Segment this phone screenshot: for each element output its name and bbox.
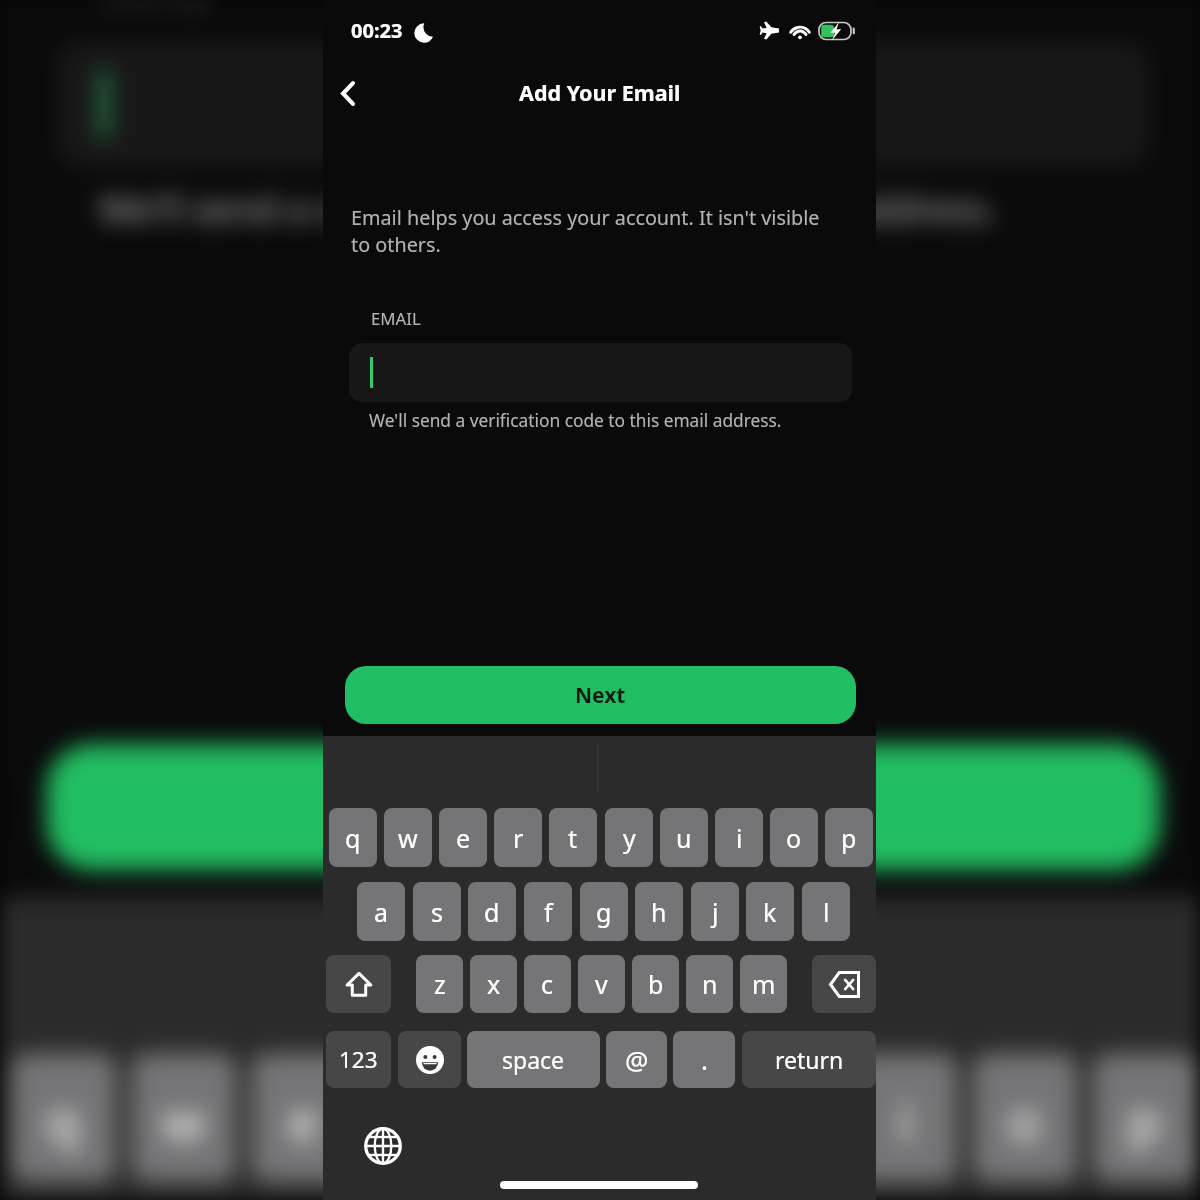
staticText: j — [712, 895, 719, 929]
staticText: return — [775, 1044, 844, 1075]
staticText: k — [763, 895, 777, 929]
staticText: . — [701, 1042, 708, 1077]
button[interactable]: e — [439, 808, 487, 867]
button[interactable]: g — [580, 882, 628, 941]
button[interactable]: v — [578, 955, 625, 1013]
staticText: 00:23 — [351, 17, 403, 44]
button[interactable]: a — [357, 882, 405, 941]
button[interactable]: r — [494, 808, 542, 867]
button[interactable]: x — [470, 955, 517, 1013]
staticText: o — [1008, 1082, 1043, 1156]
button[interactable]: j — [691, 882, 739, 941]
staticText: a — [374, 895, 389, 929]
button[interactable]: 123 — [326, 1031, 391, 1088]
button[interactable]: k — [746, 882, 794, 941]
button[interactable]: p — [825, 808, 873, 867]
staticText: Next — [575, 681, 626, 710]
button[interactable]: d — [468, 882, 516, 941]
staticText: y — [652, 1082, 681, 1156]
button[interactable]: l — [802, 882, 850, 941]
staticText: t — [532, 1082, 554, 1156]
button[interactable]: n — [686, 955, 733, 1013]
button[interactable]: m — [740, 955, 787, 1013]
staticText: q — [345, 821, 361, 855]
staticText: 123 — [339, 1044, 378, 1075]
staticText: We'll send a verification code to this e… — [99, 184, 999, 236]
button[interactable]: Back — [325, 70, 371, 116]
staticText: z — [434, 967, 446, 1001]
button[interactable]: q — [329, 808, 377, 867]
button[interactable]: Change keyboard — [365, 1128, 401, 1164]
button[interactable]: w — [384, 808, 432, 867]
button[interactable]: t — [549, 808, 597, 867]
staticText: Email helps you access your account. It … — [351, 204, 820, 258]
staticText: Next — [548, 777, 659, 840]
button[interactable]: u — [660, 808, 708, 867]
staticText: e — [288, 1082, 321, 1156]
button[interactable]: Emoji — [398, 1031, 461, 1088]
staticText: @ — [625, 1042, 649, 1077]
staticText: n — [702, 967, 718, 1001]
staticText: r — [412, 1082, 436, 1156]
button[interactable]: s — [413, 882, 461, 941]
staticText: v — [595, 967, 608, 1001]
button[interactable]: f — [524, 882, 572, 941]
staticText: u — [768, 1082, 803, 1156]
staticText: s — [431, 895, 443, 929]
staticText: l — [823, 895, 830, 929]
button[interactable]: i — [715, 808, 763, 867]
button[interactable]: h — [635, 882, 683, 941]
staticText: w — [398, 821, 418, 855]
button[interactable]: Shift — [326, 955, 391, 1013]
staticText: Add Your Email — [519, 78, 681, 107]
staticText: We'll send a verification code to this e… — [369, 409, 782, 433]
staticText: t — [568, 821, 578, 855]
staticText: h — [651, 895, 667, 929]
button[interactable] — [349, 343, 852, 402]
staticText: EMAIL — [371, 307, 421, 330]
staticText: b — [648, 967, 664, 1001]
staticText: x — [487, 967, 501, 1001]
staticText: m — [752, 967, 776, 1001]
staticText: r — [513, 821, 524, 855]
button[interactable]: c — [524, 955, 571, 1013]
staticText: o — [786, 821, 802, 855]
staticText: p — [841, 821, 857, 855]
button[interactable]: z — [416, 955, 463, 1013]
button[interactable]: @ — [606, 1031, 667, 1088]
staticText: p — [1128, 1082, 1162, 1156]
staticText: y — [623, 821, 636, 855]
staticText: d — [484, 895, 500, 929]
staticText: w — [162, 1082, 205, 1156]
staticText: c — [541, 967, 554, 1001]
button[interactable]: . — [673, 1031, 735, 1088]
button[interactable]: b — [632, 955, 679, 1013]
button[interactable]: y — [605, 808, 653, 867]
button[interactable]: return — [742, 1031, 876, 1088]
button[interactable]: space — [467, 1031, 600, 1088]
staticText: f — [544, 895, 553, 929]
staticText: q — [46, 1082, 81, 1156]
staticText: e — [456, 821, 471, 855]
staticText: i — [899, 1082, 914, 1156]
button[interactable]: Backspace — [812, 955, 876, 1013]
staticText: g — [596, 895, 612, 929]
staticText: space — [502, 1044, 565, 1075]
button[interactable]: Next — [345, 666, 856, 724]
button[interactable]: o — [770, 808, 818, 867]
staticText: u — [676, 821, 692, 855]
staticText: i — [736, 821, 743, 855]
